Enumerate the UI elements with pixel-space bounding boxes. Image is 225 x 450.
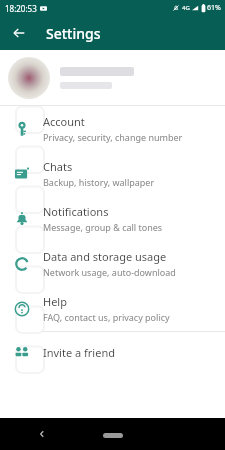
staticText: Settings (46, 24, 101, 43)
staticText: Privacy, security, change number (43, 131, 183, 143)
button[interactable]: Back (8, 22, 30, 44)
staticText: Backup, history, wallpaper (43, 176, 155, 188)
button[interactable]: Chats (0, 151, 225, 196)
button[interactable]: Notifications (0, 196, 225, 241)
button[interactable]: Invite a friend (0, 332, 225, 372)
button[interactable]: Account (0, 106, 225, 151)
staticText: FAQ, contact us, privacy policy (43, 311, 170, 323)
button[interactable]: Help (0, 286, 225, 331)
staticText: Help (43, 294, 67, 309)
staticText: 18:20:53 (5, 3, 37, 14)
staticText: Chats (43, 159, 73, 174)
button[interactable]: Back (32, 424, 52, 444)
staticText: Data and storage usage (43, 249, 167, 264)
staticText: Account (43, 114, 85, 129)
staticText: 4G (182, 4, 190, 12)
staticText: Network usage, auto-download (43, 266, 176, 278)
staticText: Notifications (43, 204, 109, 219)
staticText: Invite a friend (43, 345, 115, 360)
button[interactable]: Data and storage usage (0, 241, 225, 286)
staticText: 61% (207, 3, 221, 13)
button[interactable]: Home (103, 433, 123, 438)
staticText: Message, group & call tones (43, 221, 163, 233)
button[interactable] (0, 50, 225, 105)
